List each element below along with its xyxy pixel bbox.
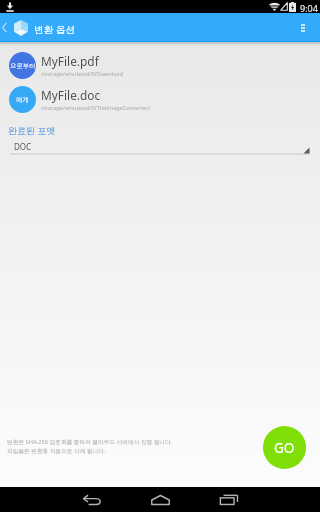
button[interactable]: Home (136, 487, 184, 512)
staticText: /storage/emulated/0/TheImageConverter/ (41, 104, 151, 111)
staticText: 완료된 포맷 (8, 124, 56, 136)
button[interactable]: 에게 (0, 81, 320, 117)
staticText: 파일들은 변환후 자동으로 삭제 됩니다. (7, 447, 106, 455)
staticText: 으로부터 (10, 62, 36, 70)
button[interactable]: Back (68, 487, 116, 512)
button[interactable]: Navigate up (0, 13, 30, 42)
staticText: MyFile.pdf (41, 53, 99, 69)
staticText: 9:04 (300, 2, 318, 14)
button[interactable]: More options (292, 13, 314, 42)
staticText: GO (274, 439, 295, 457)
staticText: DOC (14, 141, 32, 152)
staticText: 변환 옵션 (34, 23, 76, 36)
button[interactable]: GO (263, 426, 306, 469)
staticText: /storage/emulated/0/Download (41, 70, 123, 77)
button[interactable]: Recent apps (205, 487, 253, 512)
staticText: 변환은 SHA-256 암호화를 통하여 클라우드 서버에서 진행 됩니다. (7, 438, 173, 446)
staticText: MyFile.doc (41, 87, 101, 103)
button[interactable]: DOC (10, 140, 310, 158)
staticText: 에게 (16, 96, 29, 104)
button[interactable]: 으로부터 (0, 47, 320, 83)
